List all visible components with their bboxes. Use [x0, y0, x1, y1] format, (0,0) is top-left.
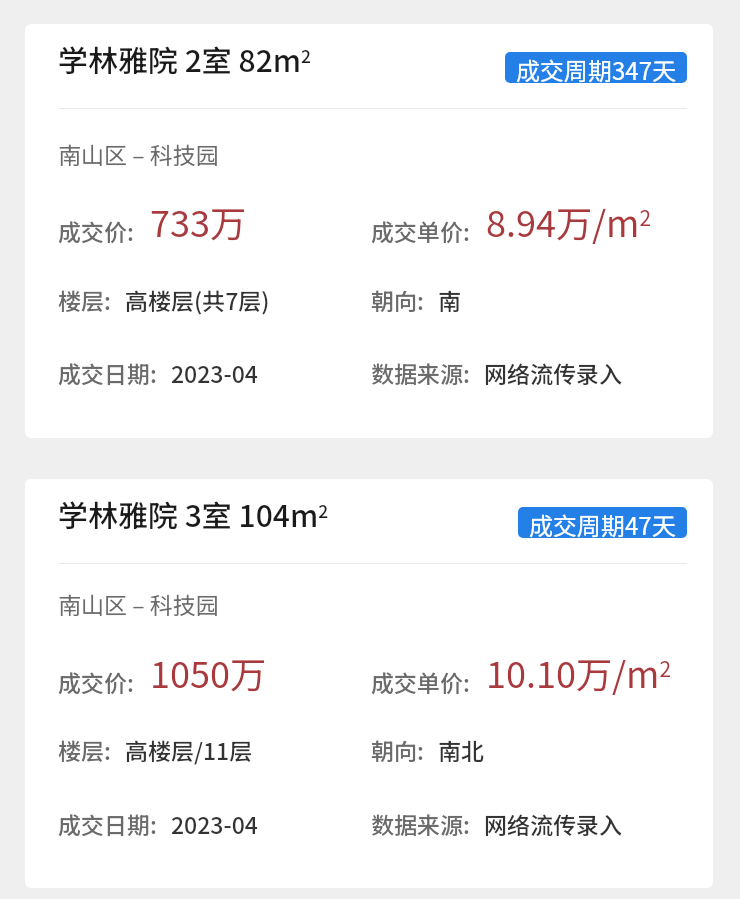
staticText: 成交日期: — [58, 807, 157, 840]
staticText: 楼层: — [58, 733, 111, 766]
staticText: 1050万 — [150, 646, 266, 698]
staticText: 数据来源: — [371, 356, 470, 389]
staticText: 成交周期47天 — [529, 507, 676, 538]
staticText: 学林雅院 3室 104m2 — [58, 492, 329, 535]
staticText: 高楼层(共7层) — [125, 283, 270, 316]
staticText: 成交价: — [58, 214, 134, 247]
staticText: 数据来源: — [371, 807, 470, 840]
staticText: 朝向: — [371, 733, 424, 766]
button[interactable]: 学林雅院 2室 82m2 — [25, 24, 713, 438]
staticText: 2023-04 — [171, 807, 258, 840]
button[interactable]: 学林雅院 3室 104m2 — [25, 479, 713, 888]
staticText: 南 — [438, 283, 461, 316]
staticText: 2023-04 — [171, 356, 258, 389]
button[interactable]: 成交周期47天 — [518, 507, 687, 538]
staticText: 成交价: — [58, 665, 134, 698]
staticText: 学林雅院 2室 82m2 — [58, 37, 312, 80]
staticText: 733万 — [150, 195, 246, 247]
staticText: 成交日期: — [58, 356, 157, 389]
staticText: 南山区 – 科技园 — [58, 137, 219, 170]
staticText: 楼层: — [58, 283, 111, 316]
staticText: 8.94万/m2 — [486, 195, 651, 247]
staticText: 南山区 – 科技园 — [58, 587, 219, 620]
staticText: 高楼层/11层 — [125, 733, 253, 766]
staticText: 成交单价: — [371, 665, 470, 698]
staticText: 网络流传录入 — [484, 807, 622, 840]
staticText: 成交周期347天 — [516, 52, 676, 83]
staticText: 南北 — [438, 733, 484, 766]
staticText: 10.10万/m2 — [486, 646, 671, 698]
staticText: 朝向: — [371, 283, 424, 316]
staticText: 网络流传录入 — [484, 356, 622, 389]
button[interactable]: 成交周期347天 — [505, 52, 687, 83]
staticText: 成交单价: — [371, 214, 470, 247]
